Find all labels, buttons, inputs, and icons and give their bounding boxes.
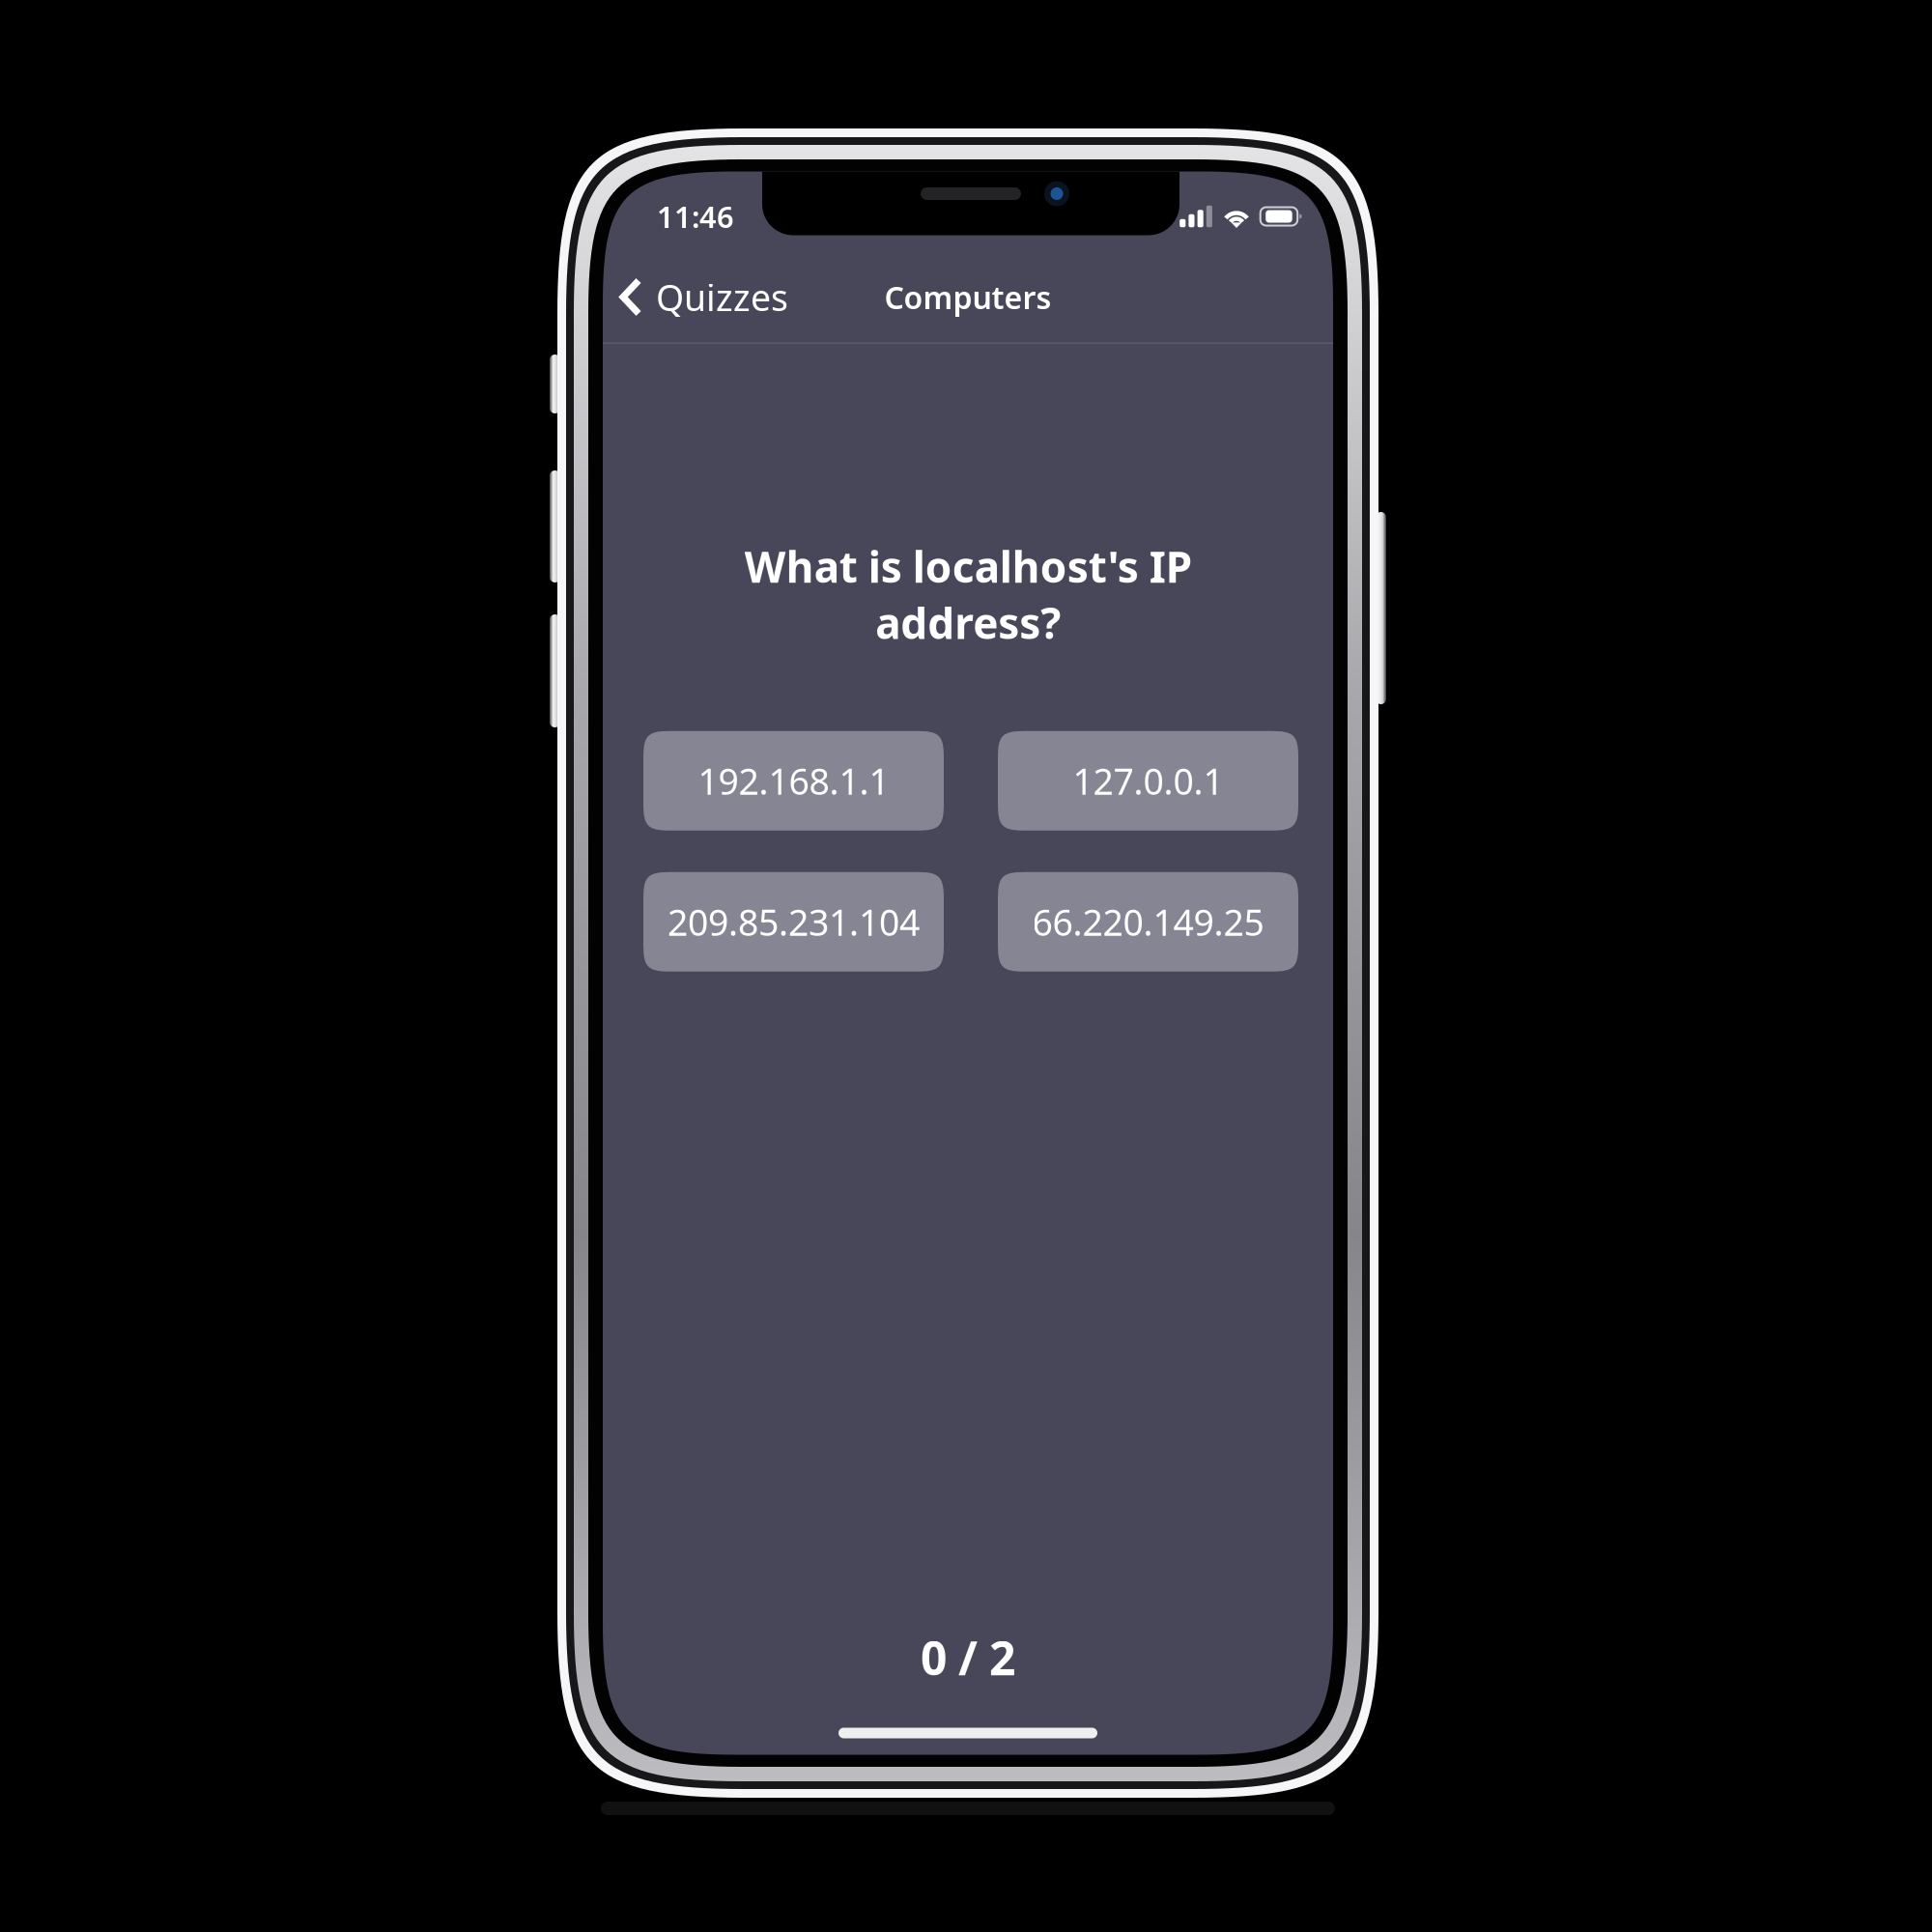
button[interactable]: 66.220.149.25	[998, 872, 1298, 972]
staticText: 209.85.231.104	[668, 898, 920, 946]
button[interactable]: 209.85.231.104	[643, 872, 944, 972]
staticText: 192.168.1.1	[698, 757, 889, 805]
staticText: 66.220.149.25	[1032, 898, 1264, 946]
button[interactable]: 192.168.1.1	[643, 731, 944, 831]
staticText: 11:46	[657, 197, 734, 236]
staticText: 127.0.0.1	[1073, 757, 1223, 805]
button[interactable]: Quizzes	[603, 261, 806, 334]
staticText: 0 / 2	[921, 1627, 1015, 1688]
staticText: Computers	[884, 277, 1051, 318]
button[interactable]: 127.0.0.1	[998, 731, 1298, 831]
staticText: Quizzes	[656, 273, 788, 321]
staticText: What is localhost's IP address?	[744, 538, 1192, 651]
